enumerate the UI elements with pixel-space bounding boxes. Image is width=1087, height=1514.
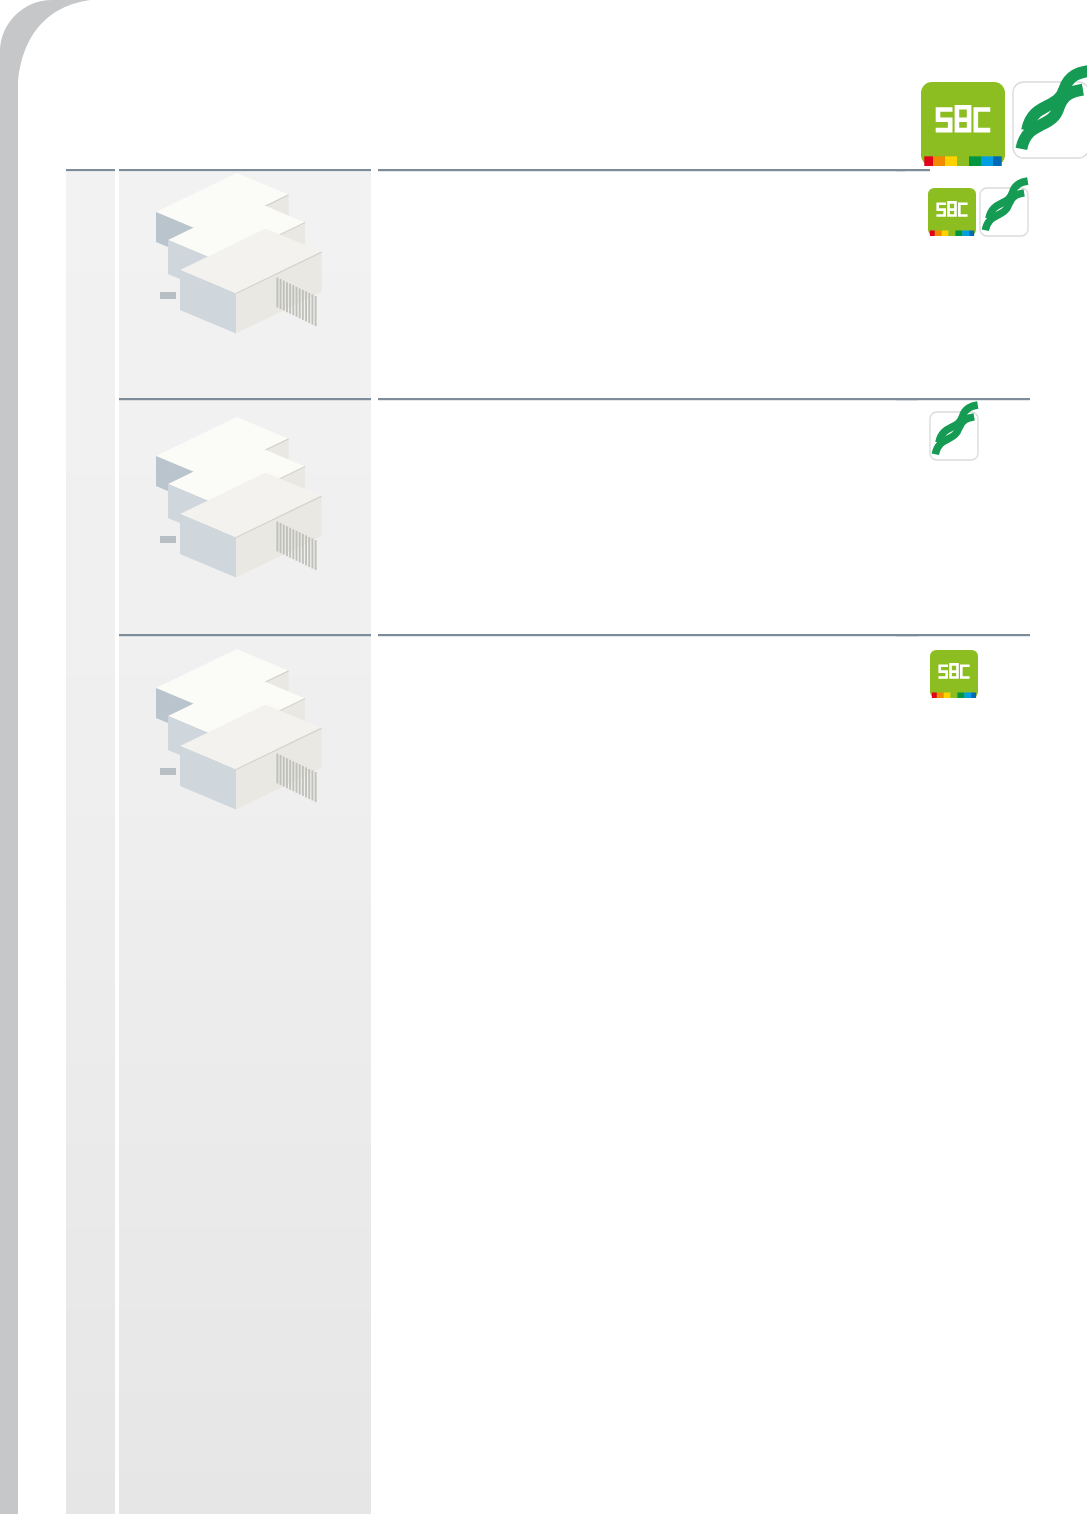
button[interactable]: SBC Saia-Burgess Controls logo: [920, 80, 1085, 162]
button[interactable]: SBC mark: [930, 650, 978, 698]
button[interactable]: Saia swoosh mark: [930, 410, 978, 458]
button[interactable]: Product photo row 3: [119, 636, 375, 866]
button[interactable]: Product photo row 2: [119, 400, 375, 632]
button[interactable]: SBC logo small: [927, 185, 1032, 237]
button[interactable]: Product photo row 1: [119, 172, 375, 396]
